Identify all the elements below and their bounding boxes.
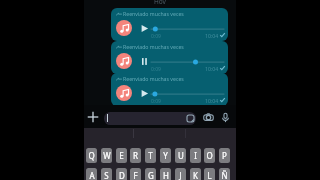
button[interactable]: Attach bbox=[87, 111, 99, 123]
button[interactable]: Stickers bbox=[186, 114, 195, 123]
button[interactable]: Y bbox=[160, 148, 171, 163]
button[interactable]: J bbox=[175, 168, 186, 180]
staticText: P bbox=[222, 150, 227, 161]
button[interactable]: A bbox=[86, 168, 97, 180]
button[interactable]: Stickers bbox=[104, 112, 196, 125]
button[interactable]: Reenviado muchas veces bbox=[111, 73, 228, 106]
staticText: S bbox=[104, 170, 109, 180]
staticText: T bbox=[148, 150, 153, 161]
button[interactable]: P bbox=[219, 148, 230, 163]
staticText: I bbox=[194, 150, 197, 161]
button[interactable]: H bbox=[160, 168, 171, 180]
button[interactable]: K bbox=[190, 168, 201, 180]
button[interactable]: O bbox=[204, 148, 215, 163]
button[interactable]: Camera bbox=[203, 112, 214, 123]
button[interactable]: D bbox=[116, 168, 127, 180]
staticText: 10:04 bbox=[205, 65, 219, 72]
button[interactable]: Voice message bbox=[220, 112, 231, 123]
button[interactable]: U bbox=[175, 148, 186, 163]
staticText: 10:04 bbox=[205, 32, 219, 39]
staticText: J bbox=[179, 170, 182, 180]
staticText: Ñ bbox=[221, 170, 228, 180]
staticText: 0:09 bbox=[151, 66, 161, 73]
staticText: E bbox=[119, 150, 124, 161]
button[interactable]: T bbox=[145, 148, 156, 163]
button[interactable]: Ñ bbox=[219, 168, 230, 180]
button[interactable]: Q bbox=[86, 148, 97, 163]
button[interactable]: Reenviado muchas veces bbox=[111, 8, 228, 41]
button[interactable]: R bbox=[130, 148, 141, 163]
staticText: D bbox=[119, 170, 125, 180]
button[interactable]: Contact photo bbox=[116, 85, 132, 101]
button[interactable]: G bbox=[145, 168, 156, 180]
staticText: Hoy bbox=[154, 0, 166, 4]
button[interactable]: Pause bbox=[140, 57, 149, 66]
staticText: F bbox=[133, 170, 138, 180]
button[interactable]: I bbox=[190, 148, 201, 163]
button[interactable]: Play bbox=[140, 24, 149, 33]
staticText: H bbox=[163, 170, 169, 180]
staticText: Reenviado muchas veces bbox=[123, 43, 184, 50]
staticText: K bbox=[193, 170, 198, 180]
staticText: O bbox=[206, 150, 213, 161]
staticText: L bbox=[207, 170, 212, 180]
staticText: R bbox=[133, 150, 138, 161]
button[interactable]: Play bbox=[140, 89, 149, 98]
staticText: 0:09 bbox=[151, 33, 161, 40]
staticText: G bbox=[148, 170, 154, 180]
staticText: Y bbox=[163, 150, 168, 161]
staticText: W bbox=[103, 150, 111, 161]
staticText: Reenviado muchas veces bbox=[123, 10, 184, 17]
button[interactable]: Contact photo bbox=[116, 20, 132, 36]
button[interactable]: S bbox=[101, 168, 112, 180]
staticText: 0:09 bbox=[151, 98, 161, 105]
staticText: U bbox=[178, 150, 184, 161]
staticText: 10:04 bbox=[205, 97, 219, 104]
button[interactable]: Contact photo bbox=[116, 53, 132, 69]
button[interactable]: Reenviado muchas veces bbox=[111, 41, 228, 74]
button[interactable]: W bbox=[101, 148, 112, 163]
staticText: Q bbox=[88, 150, 95, 161]
staticText: Reenviado muchas veces bbox=[123, 75, 184, 82]
staticText: A bbox=[89, 170, 95, 180]
button[interactable]: F bbox=[130, 168, 141, 180]
button[interactable]: L bbox=[204, 168, 215, 180]
button[interactable]: E bbox=[116, 148, 127, 163]
